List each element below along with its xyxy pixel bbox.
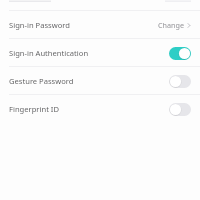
button[interactable]: Sign-in Authentication toggle [169, 47, 191, 60]
staticText: Sign-in Authentication [9, 48, 89, 58]
staticText: Change [158, 20, 184, 30]
staticText: Gesture Password [9, 76, 74, 86]
button[interactable]: Sign-in Authentication [0, 39, 200, 67]
button[interactable] [0, 0, 200, 11]
button[interactable]: Fingerprint ID toggle [169, 103, 191, 116]
staticText: Sign-in Password [9, 20, 70, 30]
staticText: Fingerprint ID [9, 104, 59, 114]
button[interactable]: Sign-in Password [0, 11, 200, 39]
other: Open [187, 22, 191, 29]
button[interactable]: Change [154, 20, 191, 30]
button[interactable]: Gesture Password [0, 67, 200, 95]
button[interactable]: Fingerprint ID [0, 95, 200, 123]
button[interactable]: Gesture Password toggle [169, 75, 191, 88]
